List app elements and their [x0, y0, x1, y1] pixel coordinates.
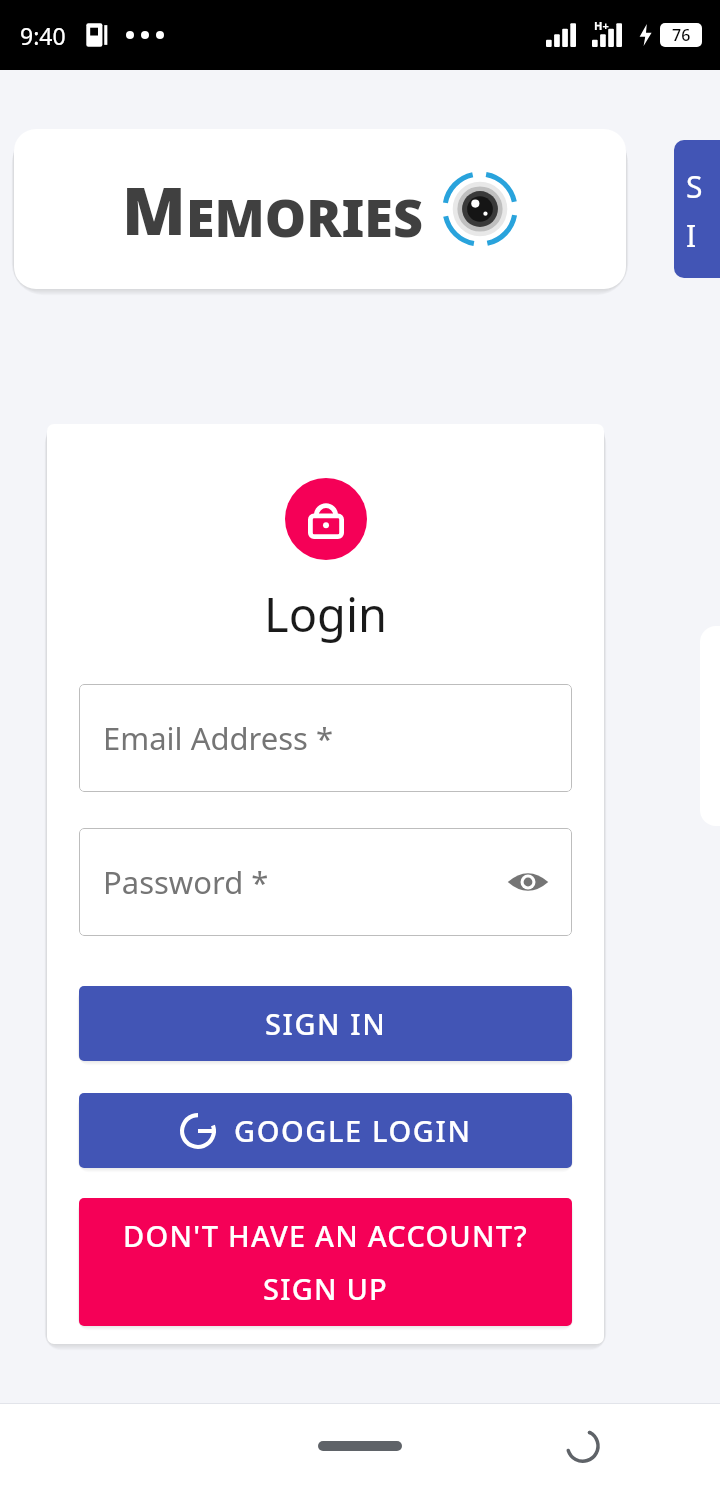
button[interactable]: SIGN IN — [79, 986, 572, 1061]
button[interactable]: GOOGLE LOGIN — [79, 1093, 572, 1168]
staticText: M — [122, 164, 186, 254]
staticText: Email Address * — [103, 717, 334, 759]
button[interactable]: M — [14, 129, 626, 289]
staticText: 9:40 — [20, 20, 66, 51]
staticText: EMORIES — [186, 181, 423, 252]
other: Camera lens logo — [441, 170, 519, 248]
staticText: SIGN UP — [263, 1269, 388, 1308]
staticText: S — [686, 166, 703, 207]
staticText: H+ — [594, 18, 609, 33]
staticText: GOOGLE LOGIN — [234, 1111, 472, 1150]
button[interactable]: Show password — [502, 856, 554, 908]
staticText: SIGN IN — [265, 1004, 387, 1043]
staticText: 76 — [672, 24, 691, 46]
button[interactable]: Home — [318, 1441, 402, 1451]
button[interactable]: Password * — [79, 828, 572, 936]
staticText: DON'T HAVE AN ACCOUNT? — [123, 1216, 528, 1255]
button[interactable]: DON'T HAVE AN ACCOUNT? — [79, 1198, 572, 1326]
staticText: Login — [264, 582, 388, 646]
staticText: I — [686, 215, 697, 256]
button[interactable]: S — [674, 140, 720, 278]
button[interactable]: Email Address * — [79, 684, 572, 792]
staticText: Password * — [103, 861, 269, 903]
button[interactable]: Back — [560, 1420, 612, 1472]
